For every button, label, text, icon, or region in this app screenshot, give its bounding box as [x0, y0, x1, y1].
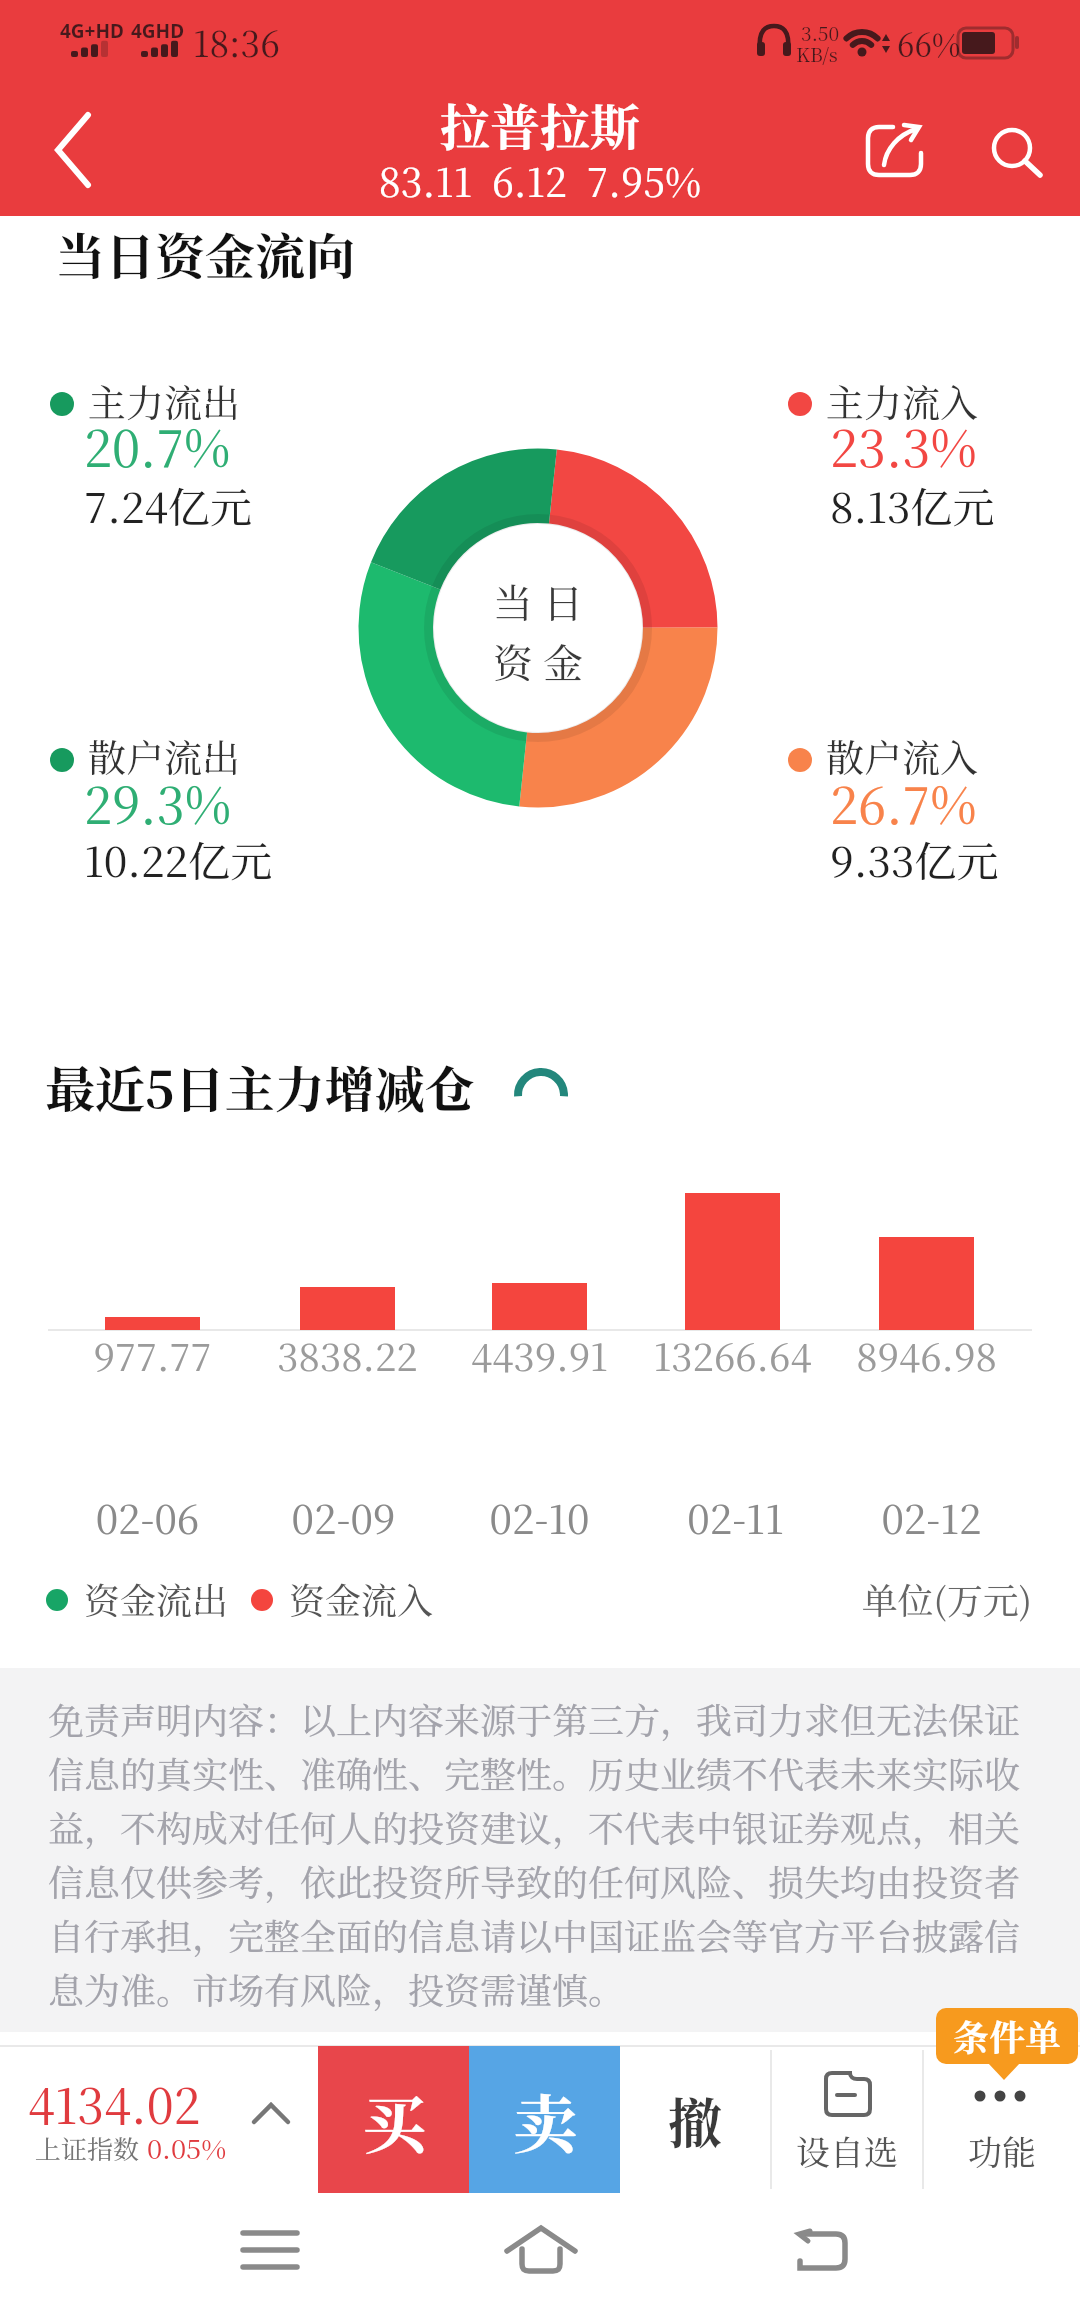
button[interactable] — [700, 2193, 940, 2316]
staticText: 29.3% — [84, 766, 232, 838]
staticText: 7.24亿元 — [84, 475, 252, 535]
staticText: 散户流出 — [88, 728, 241, 783]
staticText: 977.77 — [45, 1327, 260, 1382]
staticText: 信息仅供参考，依此投资所导致的任何风险、损失均由投资者 — [48, 1855, 1021, 1907]
button[interactable]: 撤 — [620, 2046, 770, 2193]
staticText: 买 — [362, 2074, 426, 2166]
staticText: 主力流入 — [826, 373, 979, 428]
staticText: 条件单 — [953, 2010, 1062, 2062]
staticText: 8946.98 — [819, 1327, 1034, 1382]
button[interactable] — [180, 2193, 420, 2316]
button[interactable] — [440, 2193, 680, 2316]
staticText: 02-11 — [628, 1488, 843, 1545]
staticText: 息为准。市场有风险，投资需谨慎。 — [48, 1963, 625, 2015]
staticText: 功能 — [939, 2126, 1065, 2175]
staticText: 0.05% — [147, 2128, 227, 2167]
staticText: 主力流出 — [88, 373, 241, 428]
staticText: 02-10 — [432, 1488, 647, 1545]
staticText: 设自选 — [784, 2126, 910, 2175]
staticText: KB/s — [796, 40, 838, 67]
staticText: 资金流出 — [84, 1573, 229, 1625]
staticText: 10.22亿元 — [84, 829, 273, 889]
staticText: 02-06 — [40, 1488, 255, 1545]
staticText: 02-09 — [236, 1488, 451, 1545]
staticText: 拉普拉斯 — [0, 88, 1080, 160]
staticText: 23.3% — [830, 409, 977, 481]
staticText: 4GHD — [131, 18, 185, 44]
staticText: 13266.64 — [625, 1327, 840, 1382]
staticText: 信息的真实性、准确性、完整性。历史业绩不代表未来实际收 — [48, 1747, 1021, 1799]
staticText: 自行承担，完整全面的信息请以中国证监会等官方平台披露信 — [48, 1909, 1021, 1961]
staticText: 上证指数 — [35, 2129, 140, 2166]
staticText: 撤 — [668, 2081, 722, 2159]
staticText: 4G+HD — [60, 18, 124, 44]
staticText: 20.7% — [84, 409, 231, 481]
staticText: 83.11 6.12 7.95% — [0, 152, 1080, 208]
button[interactable]: 卖 — [469, 2046, 620, 2193]
staticText: 卖 — [513, 2074, 577, 2166]
button[interactable] — [0, 2046, 318, 2193]
button[interactable] — [975, 112, 1055, 192]
button[interactable]: 买 — [318, 2046, 469, 2193]
button[interactable] — [855, 112, 935, 192]
staticText: 9.33亿元 — [830, 829, 999, 889]
staticText: 3838.22 — [240, 1327, 455, 1382]
staticText: 益，不构成对任何人的投资建议，不代表中银证券观点，相关 — [48, 1801, 1021, 1853]
staticText: 免责声明内容：以上内容来源于第三方，我司力求但无法保证 — [48, 1693, 1021, 1745]
button[interactable] — [35, 100, 110, 200]
staticText: 散户流入 — [826, 728, 979, 783]
staticText: 资金流入 — [289, 1573, 434, 1625]
staticText: 18:36 — [193, 17, 280, 67]
staticText: 当 日 — [0, 572, 1078, 629]
staticText: 26.7% — [830, 766, 977, 838]
staticText: 4439.91 — [432, 1327, 647, 1382]
button[interactable]: 功能 — [924, 2046, 1080, 2193]
button[interactable]: 条件单 — [936, 2008, 1078, 2064]
staticText: 8.13亿元 — [830, 475, 995, 535]
staticText: 3.50 — [801, 19, 840, 46]
staticText: 当日资金流向 — [55, 217, 355, 289]
staticText: 66% — [897, 21, 961, 66]
button[interactable]: 设自选 — [772, 2046, 922, 2193]
staticText: 4134.02 — [28, 2069, 201, 2138]
staticText: 单位(万元) — [800, 1573, 1032, 1625]
staticText: 最近5日主力增减仓 — [45, 1050, 475, 1122]
staticText: 02-12 — [824, 1488, 1039, 1545]
staticText: 资 金 — [0, 632, 1078, 689]
